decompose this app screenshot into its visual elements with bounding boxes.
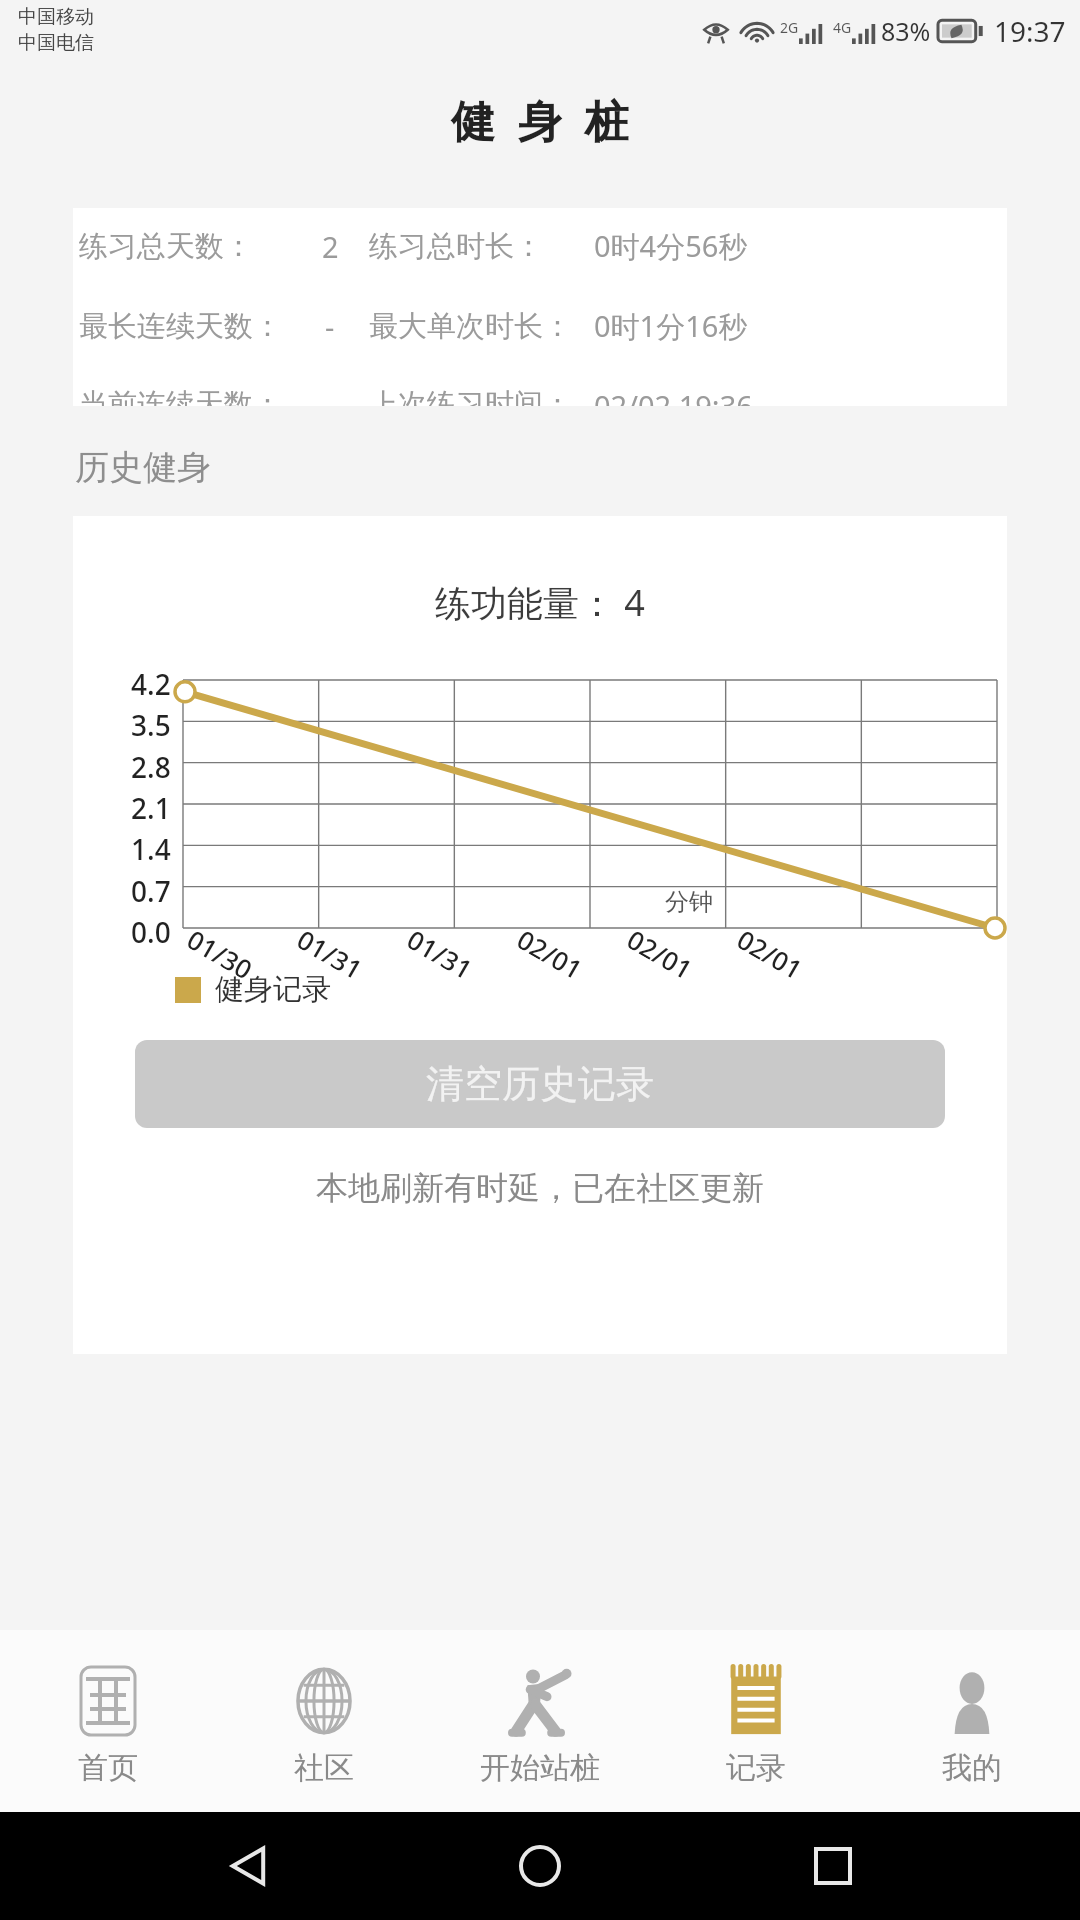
- staticText: 首页: [78, 1749, 138, 1787]
- button[interactable]: Back: [203, 1821, 293, 1911]
- staticText: 最大单次时长：: [369, 308, 572, 345]
- staticText: 2.8: [131, 748, 171, 778]
- staticText: 当前连续天数：: [79, 386, 282, 406]
- staticText: 02/02 19:36: [594, 386, 753, 406]
- button[interactable]: 记录: [648, 1630, 864, 1812]
- staticText: 2G: [780, 18, 799, 37]
- staticText: 本地刷新有时延，已在社区更新: [316, 1168, 764, 1208]
- staticText: 0时4分56秒: [594, 226, 748, 266]
- staticText: 02/01: [625, 921, 699, 981]
- staticText: 练习总天数：: [79, 228, 253, 265]
- staticText: 0时1分16秒: [594, 306, 748, 346]
- button[interactable]: 首页: [0, 1630, 216, 1812]
- button[interactable]: Recents: [788, 1821, 878, 1911]
- staticText: 02/01: [735, 921, 809, 981]
- staticText: 0.7: [131, 872, 171, 902]
- staticText: 4.2: [131, 665, 171, 695]
- staticText: 开始站桩: [480, 1749, 600, 1787]
- staticText: 0.0: [131, 913, 171, 943]
- staticText: 最长连续天数：: [79, 308, 282, 345]
- staticText: 上次练习时间：: [369, 386, 572, 406]
- staticText: 练习总时长：: [369, 228, 543, 265]
- staticText: 健身记录: [215, 971, 331, 1008]
- staticText: 2: [322, 227, 339, 266]
- button[interactable]: 开始站桩: [432, 1630, 648, 1812]
- staticText: 我的: [942, 1749, 1002, 1787]
- staticText: 01/31: [295, 921, 369, 981]
- staticText: 记录: [726, 1749, 786, 1787]
- button[interactable]: Home: [495, 1821, 585, 1911]
- staticText: 练功能量： 4: [435, 578, 645, 627]
- staticText: 分钟: [665, 887, 713, 917]
- staticText: 中国电信: [18, 31, 94, 55]
- button[interactable]: 我的: [864, 1630, 1080, 1812]
- staticText: 3.5: [131, 706, 171, 736]
- staticText: 健 身 桩: [451, 90, 629, 150]
- staticText: 1.4: [131, 830, 171, 860]
- staticText: 社区: [294, 1749, 354, 1787]
- staticText: 01/31: [405, 921, 479, 981]
- button[interactable]: 社区: [216, 1630, 432, 1812]
- staticText: 19:37: [994, 12, 1066, 50]
- staticText: 中国移动: [18, 5, 94, 29]
- staticText: 83%: [881, 14, 931, 48]
- button[interactable]: 清空历史记录: [135, 1040, 945, 1128]
- staticText: 02/01: [515, 921, 589, 981]
- staticText: 01/30: [185, 921, 259, 981]
- staticText: 清空历史记录: [426, 1060, 654, 1108]
- staticText: 4G: [833, 18, 852, 37]
- staticText: 历史健身: [75, 446, 211, 489]
- staticText: 2.1: [131, 789, 171, 819]
- staticText: -: [325, 307, 335, 346]
